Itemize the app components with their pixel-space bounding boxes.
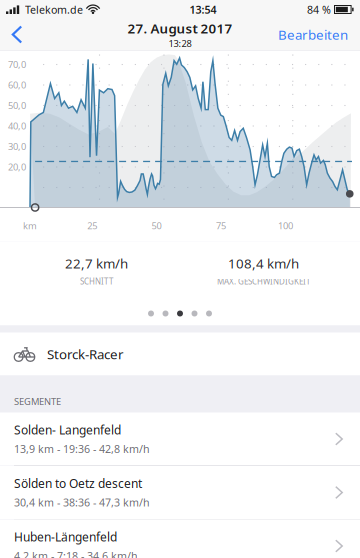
- staticText: 100: [278, 219, 293, 232]
- staticText: 50,0: [8, 99, 26, 112]
- staticText: 75: [216, 219, 226, 232]
- staticText: MAX. GESCHWINDIGKEIT: [217, 276, 310, 287]
- staticText: 84 %: [307, 2, 331, 17]
- staticText: 25: [87, 219, 97, 232]
- staticText: 20,0: [8, 161, 26, 173]
- staticText: 30,0: [8, 140, 26, 153]
- staticText: Solden- Langenfeld: [14, 422, 121, 438]
- button[interactable]: Sölden to Oetz descent: [0, 466, 360, 519]
- staticText: 108,4 km/h: [228, 254, 299, 272]
- staticText: 70,0: [8, 58, 26, 71]
- staticText: Storck-Racer: [47, 345, 124, 363]
- staticText: Huben-Längenfeld: [14, 529, 117, 545]
- button[interactable]: Huben-Längenfeld: [0, 519, 360, 558]
- staticText: 60,0: [8, 79, 26, 91]
- staticText: Telekom.de: [25, 2, 83, 17]
- staticText: 13,9 km - 19:36 - 42,8 km/h: [14, 442, 150, 456]
- staticText: 13:54: [189, 2, 216, 17]
- staticText: Sölden to Oetz descent: [14, 475, 142, 491]
- staticText: 27. August 2017: [127, 19, 232, 37]
- staticText: SCHNITT: [80, 276, 113, 287]
- staticText: km: [23, 219, 37, 232]
- staticText: 13:28: [168, 37, 191, 50]
- staticText: SEGMENTE: [14, 395, 61, 407]
- staticText: 40,0: [8, 120, 26, 132]
- button[interactable]: Storck-Racer: [0, 332, 360, 375]
- button[interactable]: Solden- Langenfeld: [0, 412, 360, 465]
- staticText: 50: [152, 219, 162, 232]
- staticText: 30,4 km - 38:36 - 47,3 km/h: [14, 495, 150, 510]
- button[interactable]: Bearbeiten: [268, 18, 360, 51]
- staticText: 4,2 km - 7:18 - 34,6 km/h: [14, 549, 138, 558]
- staticText: 22,7 km/h: [65, 254, 128, 272]
- staticText: Bearbeiten: [278, 26, 348, 43]
- button[interactable]: Back: [0, 19, 39, 49]
